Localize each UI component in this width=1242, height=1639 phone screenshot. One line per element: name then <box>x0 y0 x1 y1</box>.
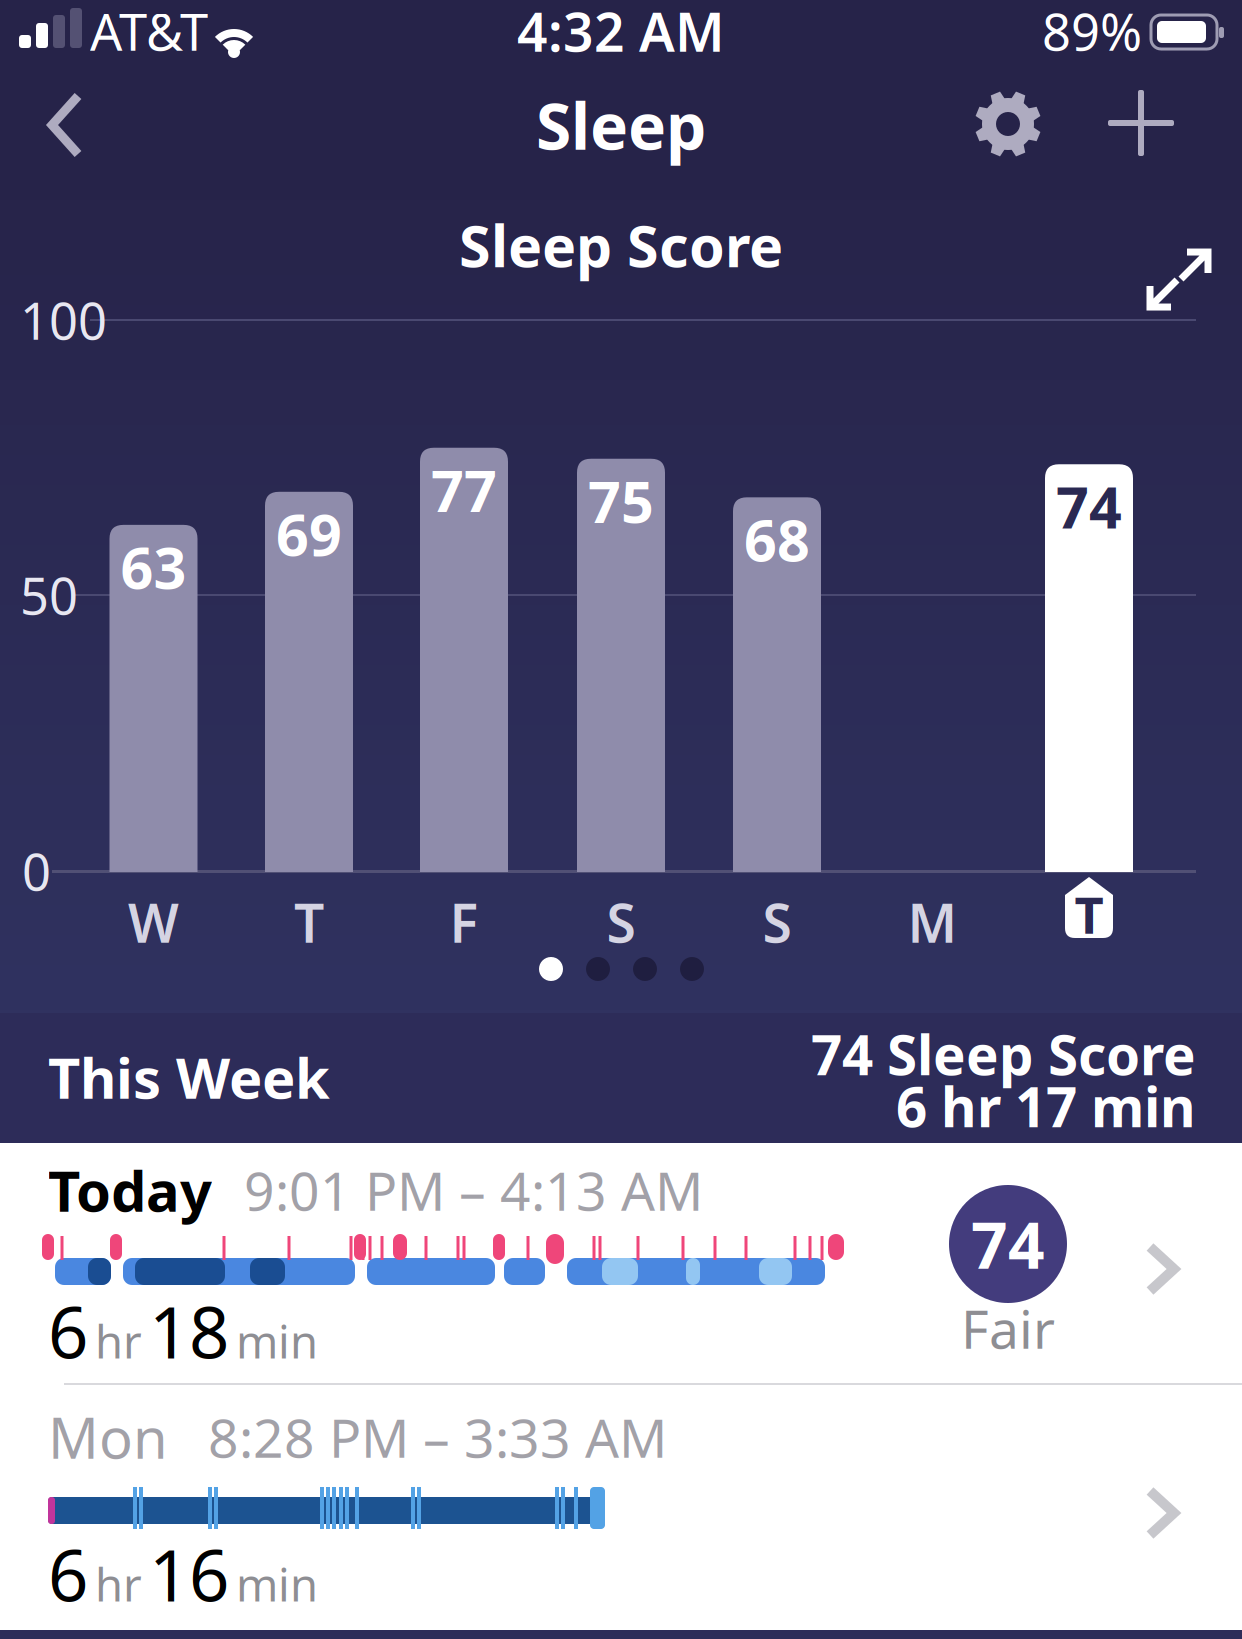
staticText: 6 hr 17 min <box>896 1070 1196 1142</box>
staticText: 16 <box>149 1527 229 1621</box>
staticText: F <box>449 887 478 957</box>
staticText: 74 Sleep Score <box>811 1018 1196 1090</box>
staticText: 9:01 PM – 4:13 AM <box>244 1155 703 1225</box>
staticText: 89% <box>1042 0 1142 65</box>
staticText: 50 <box>20 561 78 629</box>
staticText: S <box>762 887 791 957</box>
staticText: 100 <box>20 286 107 354</box>
staticText: AT&T <box>90 0 208 65</box>
staticText: M <box>907 887 957 957</box>
staticText: min <box>236 1554 318 1614</box>
button[interactable]: Add <box>1105 87 1177 159</box>
staticText: 77 <box>431 452 497 528</box>
staticText: hr <box>95 1311 142 1371</box>
staticText: 0 <box>22 837 51 905</box>
staticText: Sleep Score <box>459 207 783 283</box>
button[interactable]: Settings <box>972 88 1044 160</box>
button[interactable]: Expand chart <box>1147 249 1217 319</box>
staticText: This Week <box>48 1040 330 1114</box>
staticText: Sleep <box>536 82 706 167</box>
staticText: 6 <box>48 1284 88 1378</box>
staticText: 8:28 PM – 3:33 AM <box>208 1402 667 1472</box>
button[interactable]: Back <box>48 92 84 158</box>
staticText: 75 <box>588 463 654 539</box>
staticText: 69 <box>276 496 342 572</box>
staticText: S <box>606 887 635 957</box>
staticText: 74 <box>1056 468 1122 544</box>
staticText: hr <box>95 1554 142 1614</box>
staticText: Mon <box>48 1400 168 1474</box>
staticText: 6 <box>48 1527 88 1621</box>
button[interactable]: Today <box>0 1143 1242 1385</box>
staticText: 63 <box>120 529 186 605</box>
staticText: W <box>128 887 179 957</box>
staticText: T <box>294 887 324 957</box>
button[interactable]: Mon <box>0 1385 1242 1632</box>
staticText: min <box>236 1311 318 1371</box>
staticText: 4:32 AM <box>517 0 725 66</box>
staticText: T <box>1074 880 1103 948</box>
staticText: Today <box>48 1153 212 1227</box>
staticText: 18 <box>149 1284 229 1378</box>
staticText: Fair <box>961 1293 1055 1363</box>
staticText: 68 <box>744 501 810 577</box>
staticText: 74 <box>971 1201 1045 1286</box>
